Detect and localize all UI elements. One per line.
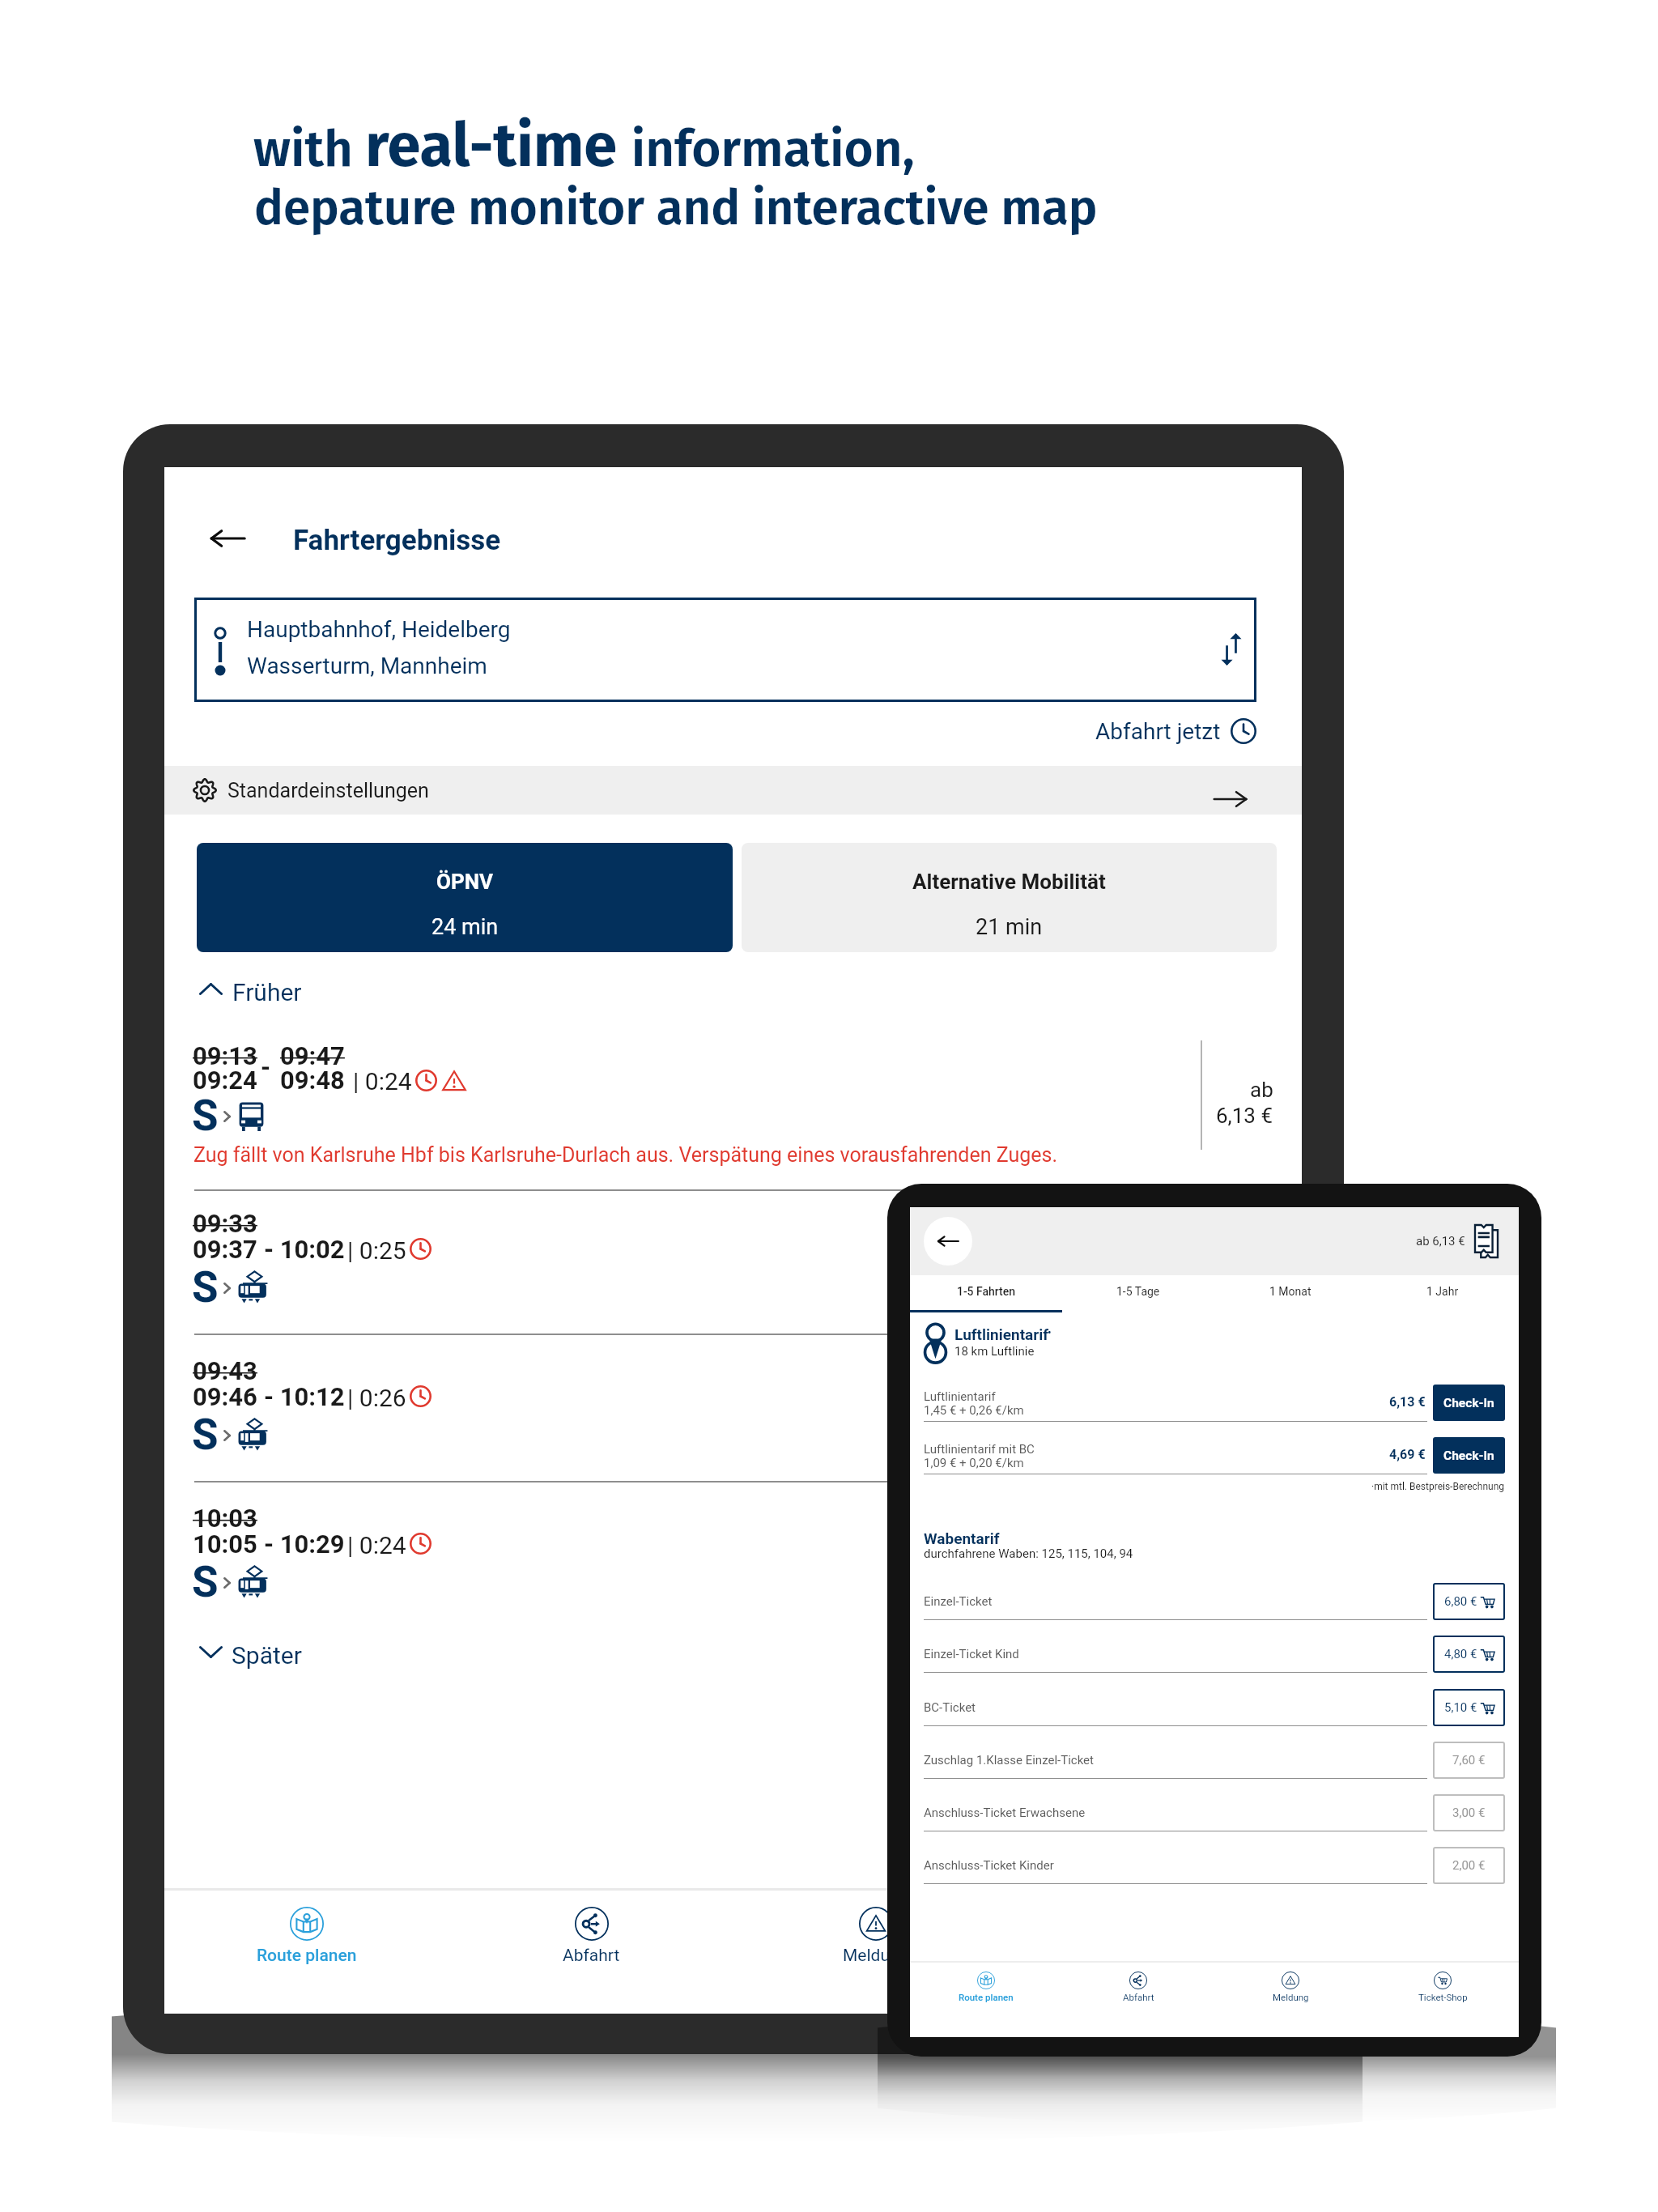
button[interactable]: Abfahrt — [1062, 1963, 1214, 2037]
button[interactable]: 09:13 — [164, 1034, 1302, 1196]
staticText: - — [261, 1053, 271, 1082]
staticText: Zuschlag 1.Klasse Einzel-Ticket — [924, 1753, 1094, 1767]
button[interactable]: 09:33 — [164, 1196, 1302, 1334]
staticText: 10:05 — [193, 1529, 257, 1559]
staticText: Meldung — [843, 1946, 909, 1966]
staticText: Luftlinientarif — [924, 1389, 996, 1404]
button[interactable]: Später — [189, 1622, 326, 1670]
button[interactable]: 5,10 € — [1433, 1689, 1505, 1726]
staticText: Später — [232, 1641, 302, 1670]
staticText: S — [192, 1091, 219, 1141]
button[interactable]: Anschluss-Ticket Erwachsene — [910, 1794, 1519, 1847]
staticText: Ticket-Shop — [1115, 1946, 1205, 1966]
staticText: Abfahrt — [1123, 1992, 1154, 2002]
button[interactable]: Back — [200, 511, 255, 566]
button[interactable]: 10:03 — [164, 1491, 1302, 1628]
button[interactable]: Meldung — [1214, 1963, 1367, 2037]
button[interactable]: 1-5 Fahrten — [910, 1275, 1062, 1312]
staticText: ·mit mtl. Bestpreis-Berechnung — [1371, 1481, 1505, 1492]
staticText: Zug fällt von Karlsruhe Hbf bis Karlsruh… — [193, 1143, 1058, 1167]
staticText: - 10:12 — [264, 1382, 345, 1411]
button[interactable]: Einzel-Ticket — [910, 1583, 1519, 1636]
staticText: Standardeinstellungen — [227, 779, 429, 802]
button[interactable]: Luftlinientarif mit BC — [910, 1437, 1519, 1490]
button[interactable]: 09:43 — [164, 1343, 1302, 1481]
staticText: 10:03 — [193, 1504, 257, 1533]
staticText: durchfahrene Waben: 125, 115, 104, 94 — [924, 1546, 1133, 1561]
staticText: Check-In — [1443, 1396, 1494, 1410]
button[interactable]: 1 Monat — [1214, 1275, 1367, 1312]
staticText: Wabentarif — [924, 1529, 1000, 1547]
button[interactable]: Meldung — [733, 1890, 1018, 2014]
button[interactable]: Check-In — [1433, 1437, 1505, 1474]
staticText: 24 min — [432, 914, 499, 940]
staticText: Anschluss-Ticket Erwachsene — [924, 1806, 1086, 1820]
staticText: 6,13 € — [1216, 1104, 1273, 1128]
staticText: 09:48 — [280, 1066, 345, 1095]
staticText: Route planen — [959, 1992, 1014, 2002]
staticText: Wasserturm, Mannheim — [247, 653, 487, 679]
staticText: 1,09 € + 0,20 €/km — [924, 1456, 1024, 1470]
staticText: ab — [1250, 1078, 1273, 1102]
button[interactable]: Ticket-Shop — [1367, 1963, 1519, 2037]
button[interactable]: Route planen — [164, 1890, 449, 2014]
button[interactable]: Abfahrt jetzt — [974, 710, 1256, 752]
staticText: Meldung — [1273, 1992, 1309, 2002]
button[interactable]: ÖPNV — [197, 843, 733, 952]
button[interactable]: 2,00 € — [1433, 1847, 1505, 1884]
button[interactable]: 1 Jahr — [1367, 1275, 1519, 1312]
staticText: • — [1048, 1326, 1052, 1339]
button[interactable]: Standardeinstellungen — [164, 766, 1302, 815]
button[interactable]: Back — [924, 1217, 972, 1266]
staticText: 1,45 € + 0,26 €/km — [924, 1403, 1024, 1418]
staticText: 21 min — [976, 914, 1043, 940]
staticText: BC-Ticket — [924, 1700, 976, 1715]
button[interactable]: Route planen — [910, 1963, 1062, 2037]
button[interactable]: Hauptbahnhof, Heidelberg — [194, 598, 1256, 702]
staticText: depature monitor and interactive map — [254, 179, 1098, 237]
staticText: 1-5 Fahrten — [957, 1285, 1016, 1298]
staticText: Fahrtergebnisse — [293, 524, 501, 557]
button[interactable]: 7,60 € — [1433, 1742, 1505, 1779]
staticText: - 10:02 — [264, 1235, 345, 1264]
staticText: Route planen — [257, 1946, 357, 1966]
button[interactable]: Luftlinientarif — [910, 1385, 1519, 1437]
staticText: Abfahrt jetzt — [1095, 718, 1221, 745]
button[interactable]: 3,00 € — [1433, 1794, 1505, 1831]
staticText: with real-time information, — [253, 110, 915, 182]
staticText: Check-In — [1443, 1448, 1494, 1463]
staticText: S — [192, 1262, 219, 1312]
staticText: Luftlinientarif — [954, 1325, 1049, 1343]
button[interactable]: 6,80 € — [1433, 1583, 1505, 1620]
button[interactable]: Einzel-Ticket Kind — [910, 1636, 1519, 1688]
staticText: 4,80 € — [1444, 1647, 1477, 1661]
staticText: 2,00 € — [1452, 1858, 1486, 1873]
button[interactable]: Check-In — [1433, 1385, 1505, 1421]
staticText: | 0:26 — [347, 1384, 406, 1412]
staticText: 3,00 € — [1452, 1806, 1486, 1820]
staticText: S — [192, 1410, 219, 1460]
staticText: 5,10 € — [1444, 1700, 1477, 1715]
staticText: 09:47 — [280, 1041, 345, 1070]
button[interactable]: Swap origin and destination — [1209, 612, 1254, 687]
staticText: 09:13 — [193, 1041, 257, 1070]
button[interactable]: Früher — [189, 964, 326, 1013]
button[interactable]: 4,80 € — [1433, 1636, 1505, 1673]
staticText: 1 Jahr — [1426, 1285, 1459, 1298]
staticText: - 10:29 — [264, 1529, 345, 1559]
staticText: 09:46 — [193, 1382, 257, 1411]
button[interactable]: Alternative Mobilität — [742, 843, 1277, 952]
button[interactable]: Zuschlag 1.Klasse Einzel-Ticket — [910, 1742, 1519, 1794]
button[interactable]: BC-Ticket — [910, 1689, 1519, 1742]
staticText: Anschluss-Ticket Kinder — [924, 1858, 1054, 1873]
staticText: 09:24 — [193, 1066, 257, 1095]
button[interactable]: Anschluss-Ticket Kinder — [910, 1847, 1519, 1899]
staticText: ÖPNV — [436, 870, 494, 894]
button[interactable]: Abfahrt — [449, 1890, 733, 2014]
staticText: ab 6,13 € — [1416, 1234, 1465, 1249]
staticText: 4,69 € — [1389, 1447, 1426, 1462]
button[interactable]: Ticket-Shop — [1018, 1890, 1302, 2014]
button[interactable]: 1-5 Tage — [1062, 1275, 1214, 1312]
staticText: Einzel-Ticket Kind — [924, 1647, 1019, 1661]
staticText: 6,13 € — [1389, 1394, 1426, 1410]
